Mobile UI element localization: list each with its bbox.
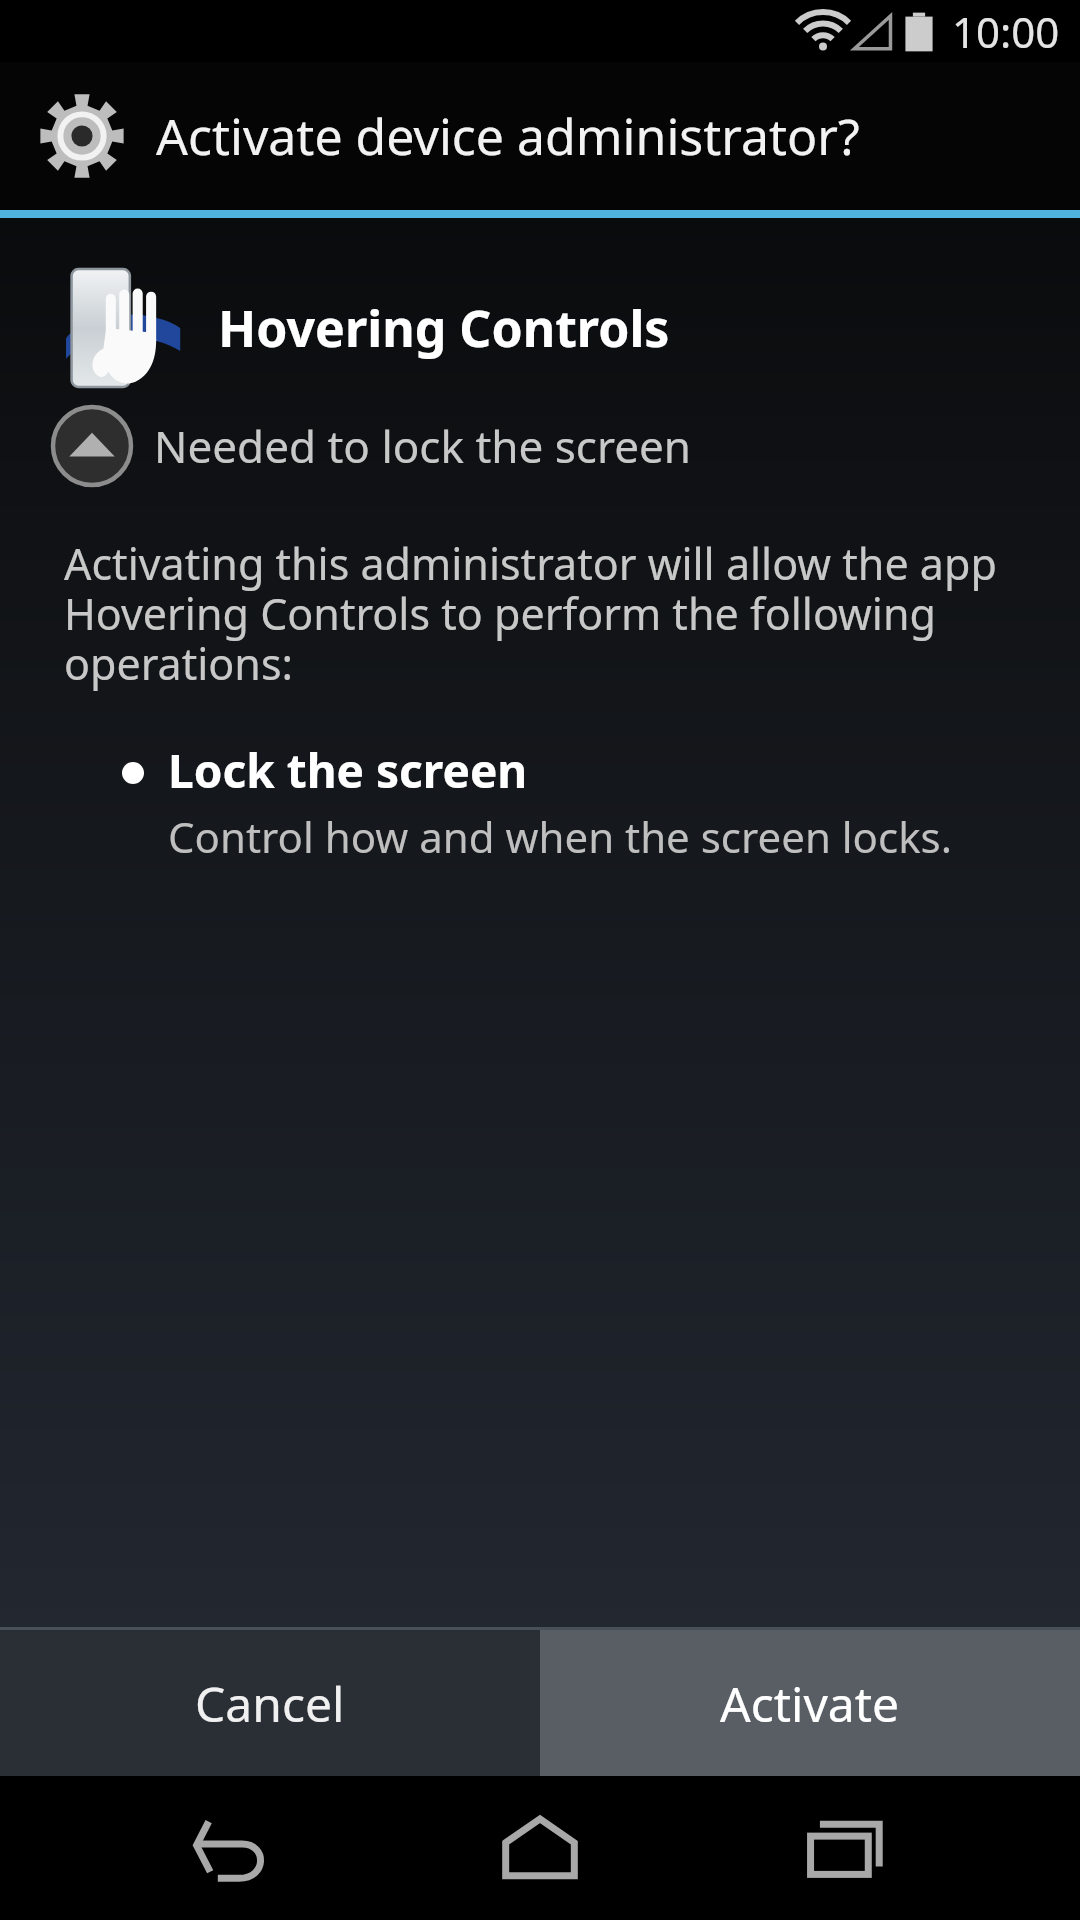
staticText: Control how and when the screen locks. [168,808,952,865]
button[interactable]: Home [465,1788,615,1908]
button[interactable]: Collapse details [50,404,134,488]
button[interactable]: Activate [540,1630,1080,1776]
staticText: Needed to lock the screen [154,416,692,476]
staticText: Activate device administrator? [156,102,860,170]
staticText: Activate [720,1671,900,1736]
button[interactable]: Recent apps [773,1788,923,1908]
staticText: Lock the screen [168,739,528,802]
staticText: Hovering Controls [218,294,670,362]
staticText: Activating this administrator will allow… [64,534,1020,693]
staticText: Cancel [195,1671,345,1736]
staticText: 10:00 [952,3,1060,60]
button[interactable]: Back [158,1788,308,1908]
button[interactable]: Cancel [0,1630,540,1776]
